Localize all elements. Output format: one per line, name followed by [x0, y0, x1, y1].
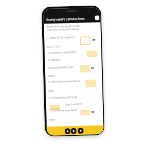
staticText: 5. Describe the issues found: [48, 79, 80, 83]
staticText: 4. Asset identifier code: [48, 65, 74, 69]
staticText: 3. Category: [48, 57, 61, 61]
staticText: Step: [48, 89, 54, 92]
staticText: 6. Photographs of the site: [49, 95, 78, 99]
staticText: Reset: [49, 117, 56, 121]
staticText: 1. Name of the inspector: [47, 35, 75, 39]
button[interactable]: Input field: [50, 104, 60, 110]
staticText: 2. Inspection site location: [47, 50, 76, 54]
button[interactable]: Profile: [94, 15, 100, 20]
button[interactable]: Input field: [86, 50, 98, 58]
button[interactable]: Input field: [85, 79, 96, 88]
button[interactable]: Input field: [80, 36, 90, 45]
button[interactable]: Survey report | Service form: [43, 7, 101, 24]
staticText: inspection in the form below.: [47, 27, 80, 31]
staticText: Date: [47, 44, 53, 48]
staticText: 7. Submit the final report: [49, 108, 78, 112]
button[interactable]: Navigation action: [65, 128, 71, 134]
staticText: Please fill in the details of the: [47, 24, 80, 28]
staticText: Time: [54, 44, 60, 47]
button[interactable]: Navigation action: [71, 128, 77, 134]
button[interactable]: Navigation action: [78, 128, 84, 134]
staticText: Notes: [48, 73, 55, 77]
button[interactable]: Input field: [80, 64, 90, 73]
staticText: Sign to confirm: [65, 102, 83, 105]
staticText: Survey report | Service form: [46, 17, 85, 22]
button[interactable]: Input field: [80, 109, 90, 116]
